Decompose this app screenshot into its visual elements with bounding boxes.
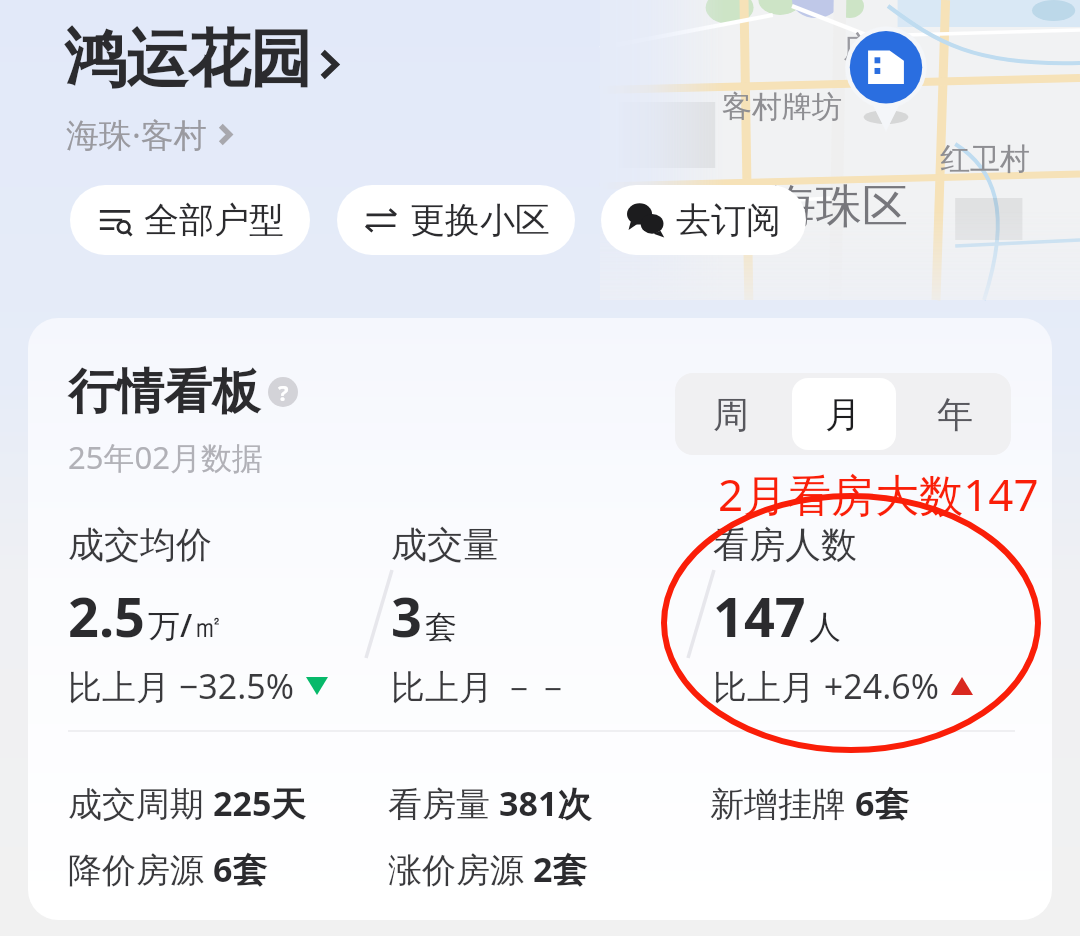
button[interactable]: 鸿运花园 (64, 20, 338, 98)
staticText: 看房人数 (713, 522, 857, 567)
staticText: 381次 (499, 780, 592, 826)
button[interactable]: 成交周期 (68, 780, 388, 826)
staticText: 降价房源 (68, 846, 213, 892)
staticText: 看房量 (388, 780, 499, 826)
staticText: 客村牌坊 (722, 88, 842, 126)
staticText: 全部户型 (144, 198, 284, 242)
button[interactable]: 海珠·客村 (66, 112, 231, 157)
staticText: 万/㎡ (148, 603, 225, 647)
staticText: 月 (825, 392, 861, 437)
staticText: 海珠区 (770, 178, 908, 236)
other: Location pin (840, 20, 932, 130)
button[interactable]: 成交均价 (68, 522, 328, 709)
staticText: 比上月 +24.6% (713, 663, 939, 709)
staticText: 套 (425, 607, 457, 647)
staticText: 25年02月数据 (68, 436, 263, 478)
staticText: 比上月 −32.5% (68, 663, 294, 709)
staticText: 去订阅 (676, 198, 781, 242)
staticText: ? (278, 377, 289, 407)
staticText: 新增挂牌 (710, 780, 855, 826)
staticText: 鸿运花园 (64, 20, 312, 98)
button[interactable]: 新增挂牌 (710, 780, 1010, 826)
staticText: 成交均价 (68, 522, 212, 567)
button[interactable]: 看房量 (388, 780, 710, 826)
staticText: 红卫村 (940, 140, 1030, 178)
staticText: 年 (937, 392, 973, 437)
other: Map (600, 0, 1080, 300)
staticText: 225天 (213, 780, 306, 826)
button[interactable]: 成交量 (391, 522, 570, 709)
button[interactable]: 涨价房源 (388, 846, 710, 892)
staticText: 成交周期 (68, 780, 213, 826)
button[interactable]: 去订阅 (601, 185, 806, 255)
staticText: 行情看板 (68, 362, 260, 422)
button[interactable]: 降价房源 (68, 846, 388, 892)
other: Help (268, 377, 298, 407)
staticText: 6套 (213, 846, 267, 892)
button[interactable]: 年 (899, 373, 1011, 455)
staticText: 3 (391, 579, 422, 653)
staticText: 人 (809, 607, 841, 647)
button[interactable]: 行情看板 (68, 362, 298, 422)
staticText: 147 (713, 579, 806, 653)
button[interactable]: 全部户型 (70, 185, 310, 255)
staticText: 周 (713, 392, 749, 437)
staticText: 比上月 －－ (391, 663, 570, 709)
staticText: 2套 (533, 846, 587, 892)
button[interactable]: 看房人数 (713, 522, 973, 709)
staticText: 广 (843, 28, 873, 66)
staticText: 2月看房大数147 (718, 464, 1039, 524)
staticText: 海珠·客村 (66, 112, 207, 157)
staticText: 更换小区 (410, 198, 550, 242)
button[interactable]: 周 (675, 373, 787, 455)
staticText: 2.5 (68, 579, 145, 653)
staticText: 涨价房源 (388, 846, 533, 892)
staticText: 6套 (855, 780, 909, 826)
button[interactable]: 月 (787, 373, 899, 455)
button[interactable]: 更换小区 (337, 185, 575, 255)
staticText: 成交量 (391, 522, 499, 567)
